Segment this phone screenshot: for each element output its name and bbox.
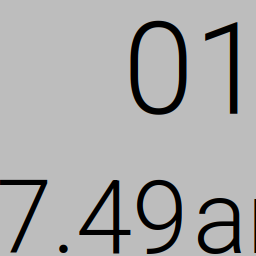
staticText: 7.49 [0, 159, 188, 256]
staticText: am [193, 159, 256, 256]
staticText: 01 [123, 0, 256, 145]
